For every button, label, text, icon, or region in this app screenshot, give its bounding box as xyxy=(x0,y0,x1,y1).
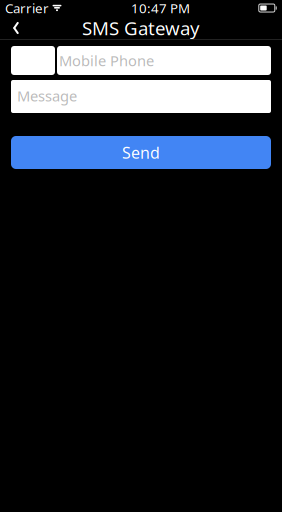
button[interactable]: Country code xyxy=(11,46,55,75)
staticText: 10:47 PM xyxy=(131,0,190,17)
staticText: Mobile Phone xyxy=(59,51,154,70)
button[interactable]: Back xyxy=(2,16,30,40)
button[interactable]: Send xyxy=(11,136,271,169)
button[interactable]: Mobile Phone xyxy=(57,46,271,75)
staticText: SMS Gateway xyxy=(82,16,200,40)
staticText: Message xyxy=(17,86,77,105)
staticText: Send xyxy=(122,142,160,163)
button[interactable]: Message xyxy=(11,80,271,113)
staticText: Carrier xyxy=(5,0,49,17)
